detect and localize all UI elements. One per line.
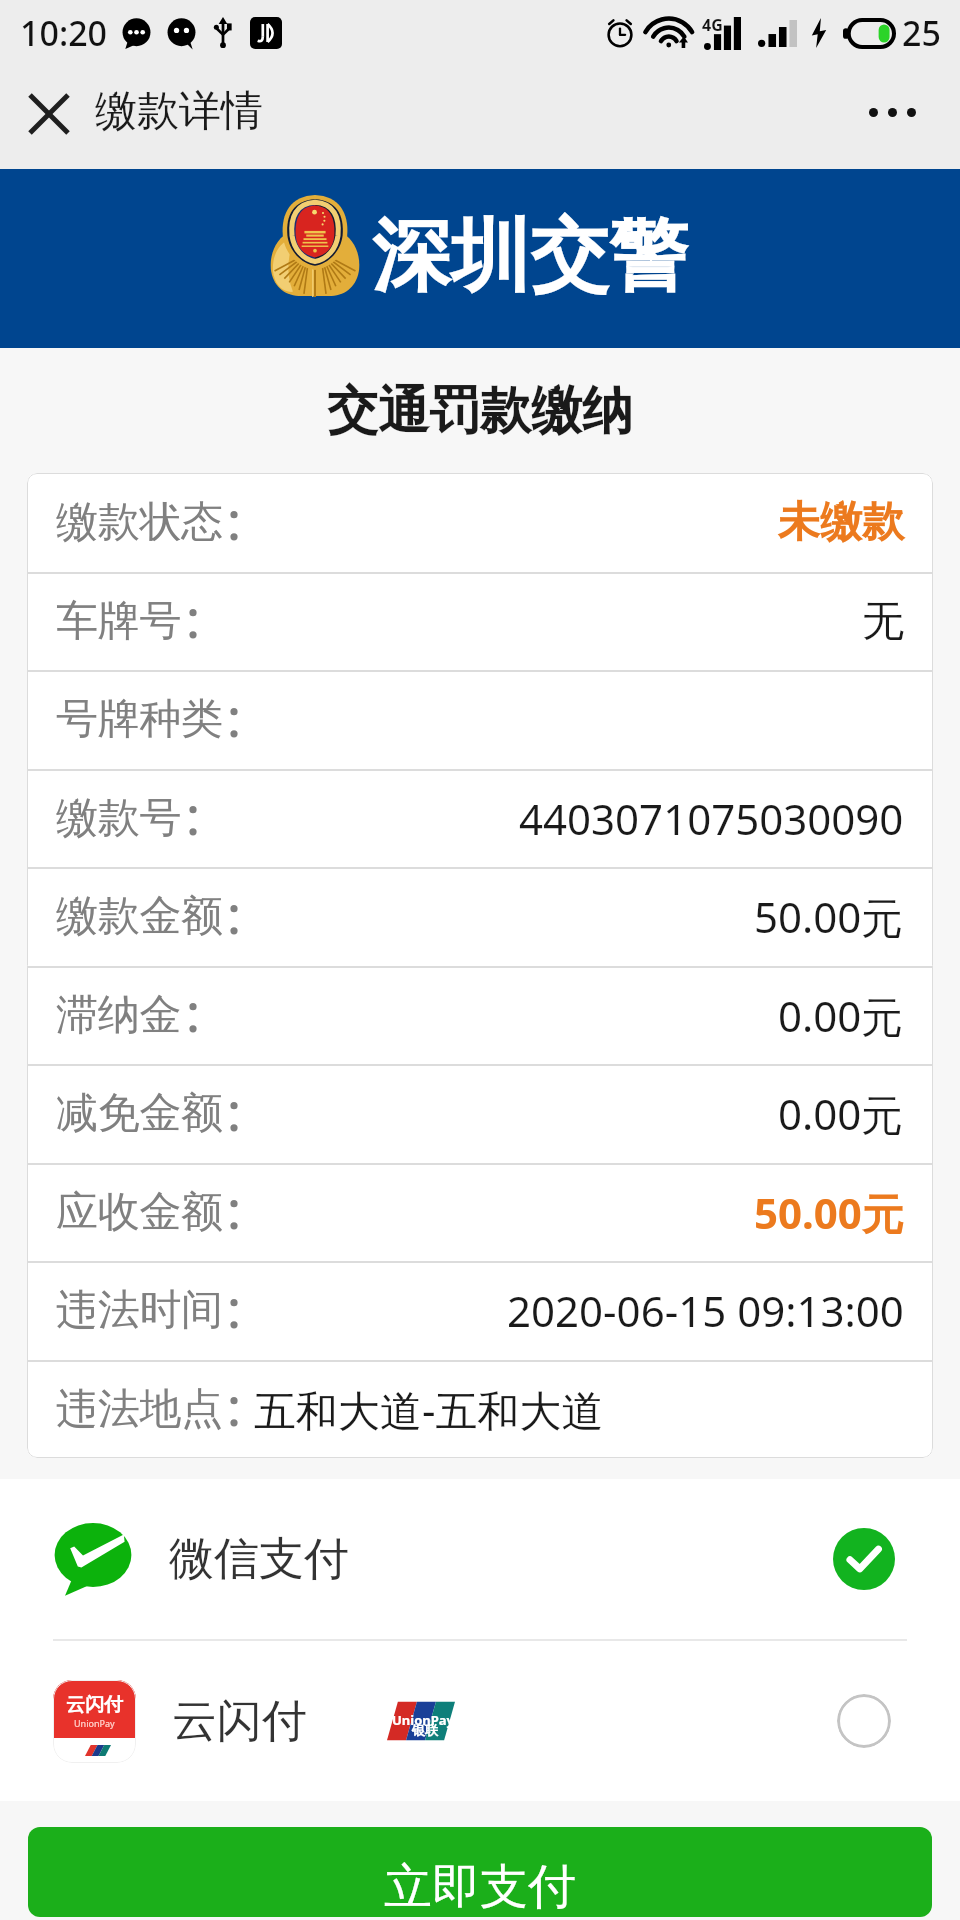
staticText: 2020-06-15 09:13:00 xyxy=(507,1282,904,1339)
staticText: 4403071075030090 xyxy=(519,790,904,847)
staticText: 违法地点 xyxy=(56,1383,223,1436)
button[interactable]: More options xyxy=(857,77,927,147)
staticText: 10:20 xyxy=(20,10,108,56)
staticText: 云闪付 xyxy=(66,1693,123,1717)
button[interactable]: 微信支付 xyxy=(0,1479,960,1639)
staticText: 50.00元 xyxy=(754,1184,904,1241)
staticText: UnionPay xyxy=(392,1711,455,1729)
staticText: 微信支付 xyxy=(169,1531,349,1588)
staticText: 车牌号 xyxy=(56,595,182,648)
staticText: 50.00元 xyxy=(754,888,904,945)
staticText: 应收金额 xyxy=(56,1186,223,1239)
staticText: 缴款号 xyxy=(56,792,182,845)
staticText: 号牌种类 xyxy=(56,693,223,746)
staticText: 未缴款 xyxy=(778,496,904,549)
staticText: 25 xyxy=(902,10,941,56)
button[interactable]: 云闪付 xyxy=(0,1641,960,1801)
button[interactable]: Close xyxy=(20,85,78,143)
staticText: 交通罚款缴纳 xyxy=(327,379,633,443)
staticText: 云闪付 xyxy=(172,1693,307,1750)
staticText: 违法时间 xyxy=(56,1284,223,1337)
staticText: UnionPay xyxy=(74,1717,115,1729)
staticText: 银联 xyxy=(412,1722,438,1738)
staticText: 深圳交警 xyxy=(372,207,688,307)
staticText: 无 xyxy=(862,595,904,648)
staticText: 缴款详情 xyxy=(95,85,263,138)
button[interactable]: 立即支付 xyxy=(28,1827,932,1917)
staticText: 五和大道-五和大道 xyxy=(254,1381,604,1438)
staticText: 0.00元 xyxy=(778,1085,904,1142)
staticText: 4G xyxy=(702,14,723,36)
staticText: 立即支付 xyxy=(384,1857,576,1917)
staticText: 缴款状态 xyxy=(56,496,223,549)
staticText: 减免金额 xyxy=(56,1087,223,1140)
staticText: 0.00元 xyxy=(778,987,904,1044)
staticText: 滞纳金 xyxy=(56,989,182,1042)
staticText: 缴款金额 xyxy=(56,890,223,943)
